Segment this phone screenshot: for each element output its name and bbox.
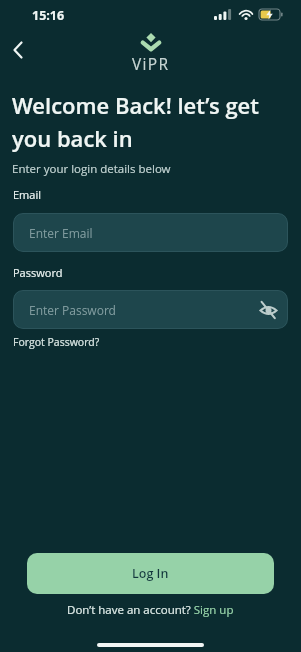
button[interactable]: Log In (27, 553, 274, 594)
staticText: Enter Email (29, 225, 93, 241)
staticText: Enter Password (29, 302, 116, 318)
staticText: 15:16 (32, 7, 65, 24)
staticText: Email (13, 187, 42, 202)
staticText: Enter your login details below (12, 161, 171, 177)
staticText: ViPR (132, 53, 170, 74)
button[interactable]: Enter Password (13, 290, 288, 329)
staticText: Password (13, 265, 63, 280)
button[interactable]: Forgot Password? (13, 335, 100, 349)
button[interactable]: Don’t have an account? Sign up (67, 602, 234, 618)
button[interactable] (10, 41, 26, 59)
staticText: Log In (132, 565, 169, 582)
button[interactable]: Enter Email (13, 213, 288, 252)
staticText: Welcome Back! let’s get you back in (12, 90, 259, 153)
